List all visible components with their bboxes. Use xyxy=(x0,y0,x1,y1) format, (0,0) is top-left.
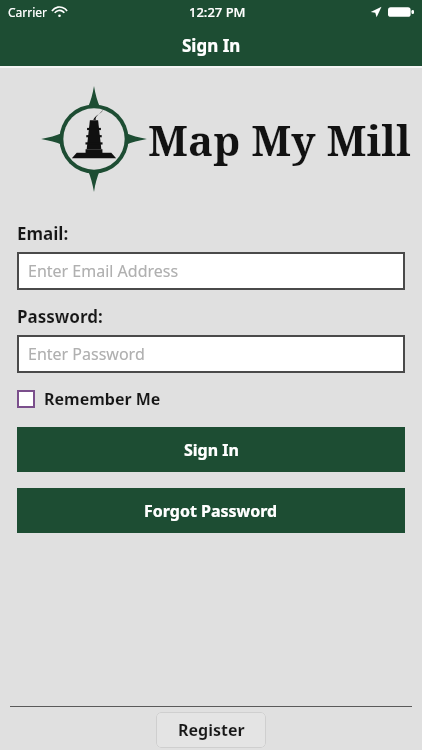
staticText: Sign In xyxy=(182,34,241,57)
staticText: Sign In xyxy=(184,439,239,461)
button[interactable]: Enter Email Address xyxy=(17,252,405,290)
staticText: 12:27 PM xyxy=(189,3,246,21)
other: Battery xyxy=(388,6,414,18)
button[interactable]: Enter Password xyxy=(17,335,405,373)
staticText: Remember Me xyxy=(44,388,161,410)
button[interactable]: Forgot Password xyxy=(17,488,405,533)
staticText: Forgot Password xyxy=(144,500,278,522)
other: Location xyxy=(370,6,382,18)
staticText: Password: xyxy=(17,305,103,328)
staticText: Enter Email Address xyxy=(28,260,179,282)
button[interactable]: Register xyxy=(156,712,266,748)
button[interactable]: Sign In xyxy=(17,427,405,472)
staticText: Enter Password xyxy=(28,343,145,365)
button[interactable]: Remember Me xyxy=(17,386,161,412)
staticText: Carrier xyxy=(8,4,48,20)
staticText: Map My Mill xyxy=(148,111,411,168)
staticText: Register xyxy=(178,719,245,741)
staticText: Email: xyxy=(17,222,69,245)
